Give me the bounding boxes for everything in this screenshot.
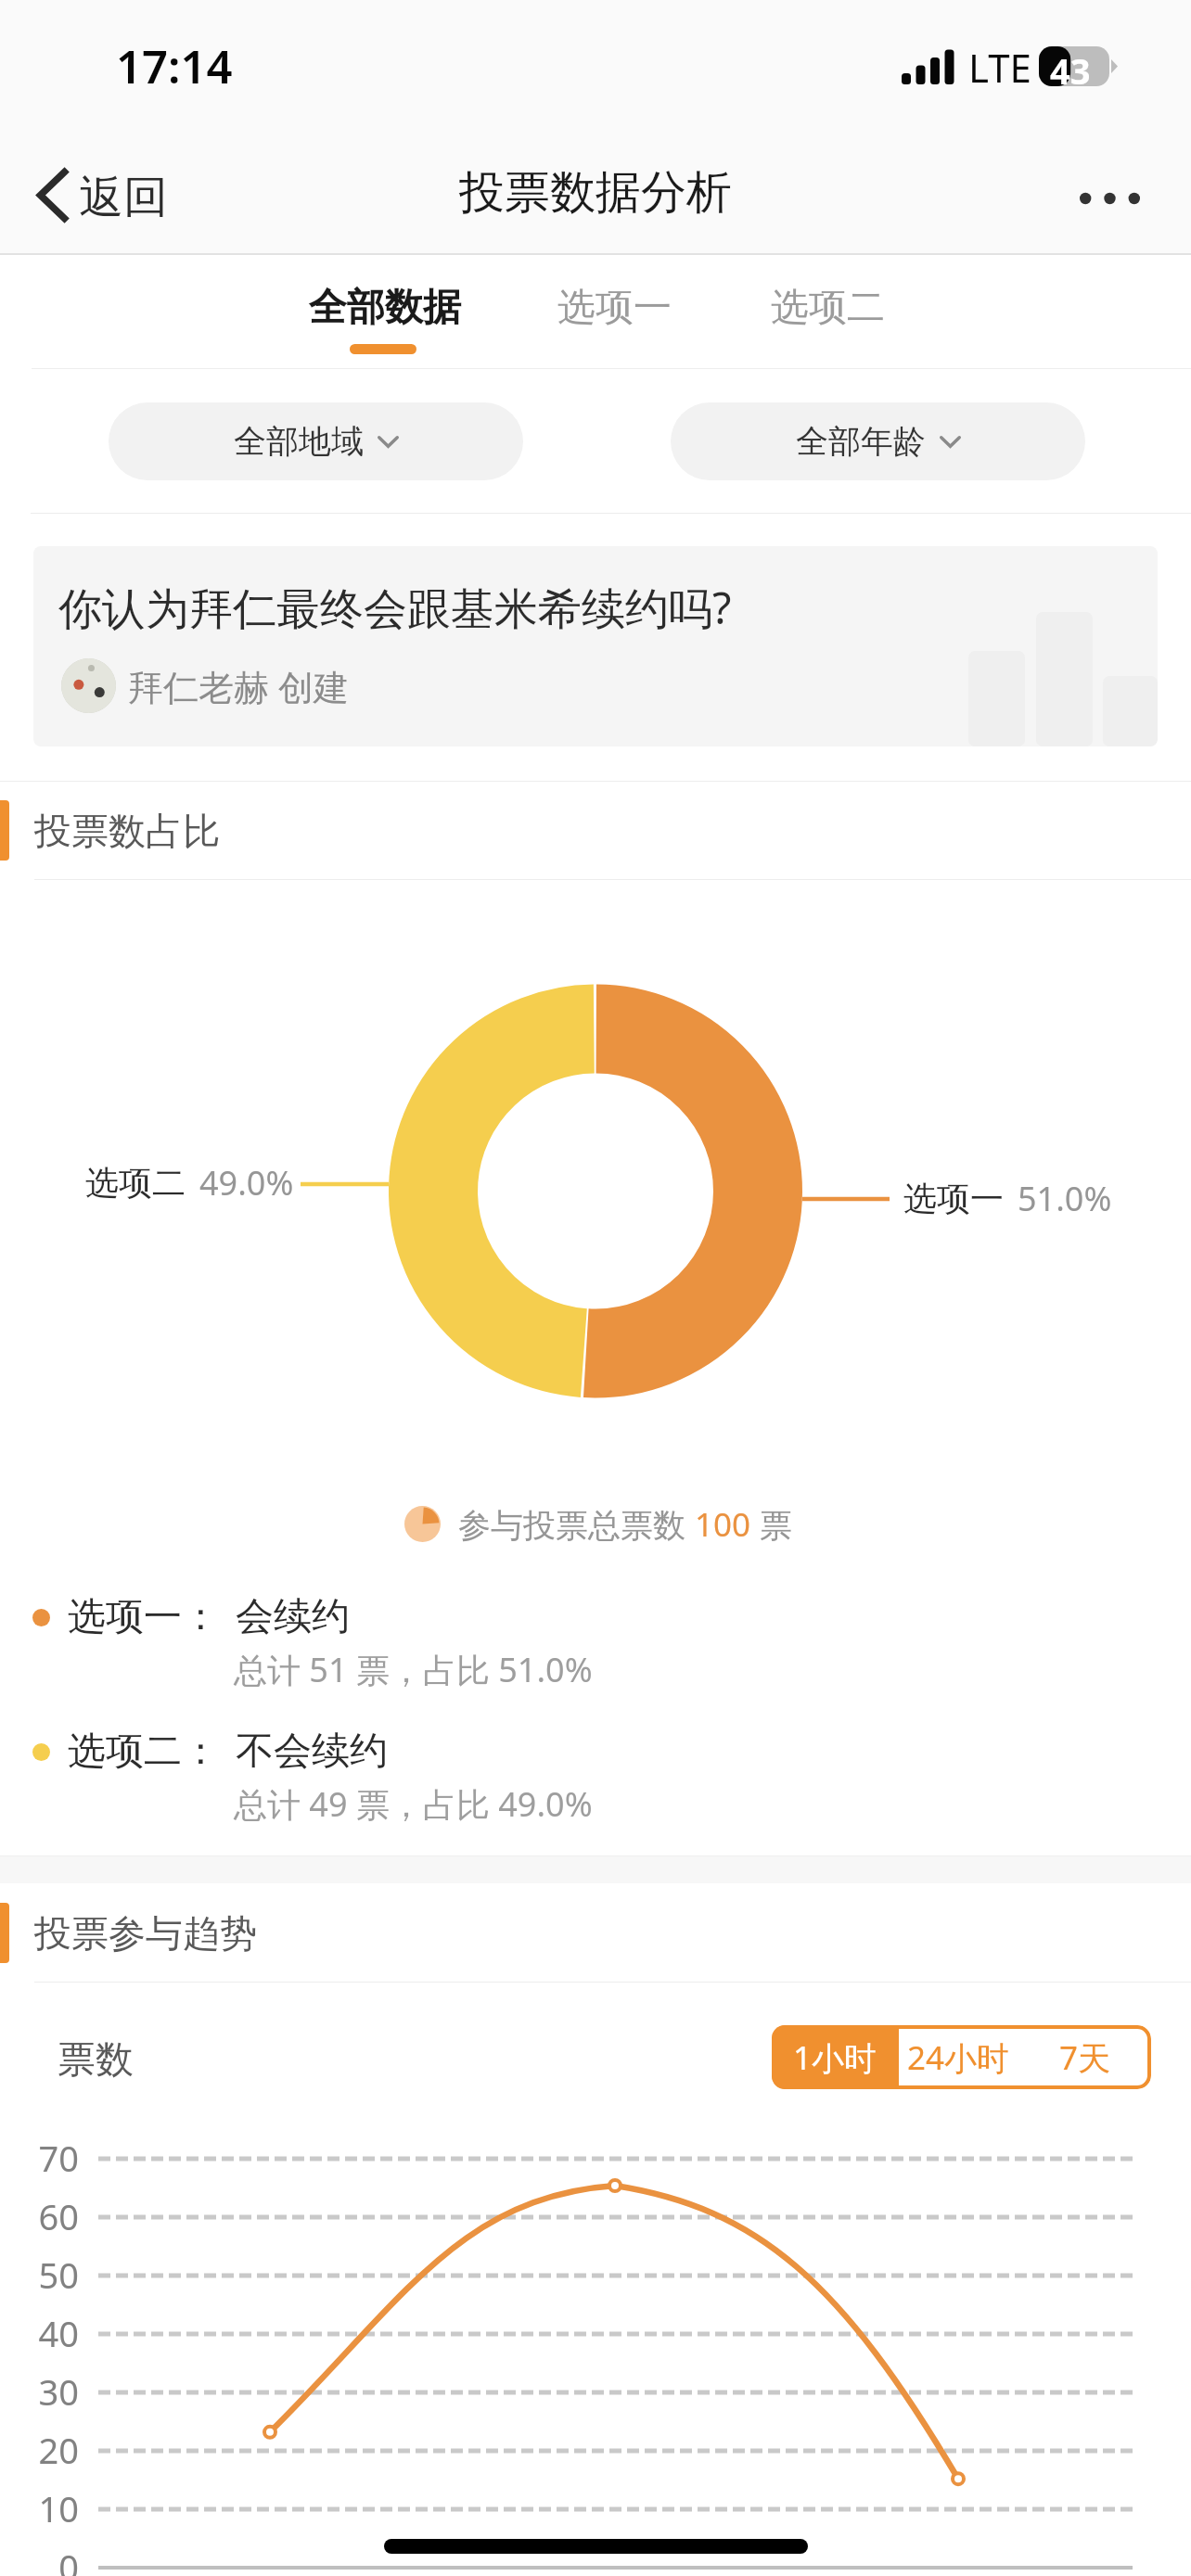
button[interactable]: 返回 xyxy=(0,155,190,240)
button[interactable]: 24小时 xyxy=(899,2025,1018,2089)
staticText: 选项一 xyxy=(557,284,672,332)
button[interactable]: 你认为拜仁最终会跟基米希续约吗? xyxy=(33,546,1158,746)
staticText: 10 xyxy=(0,2484,79,2532)
button[interactable]: 1小时 xyxy=(772,2025,899,2089)
staticText: 投票数占比 xyxy=(34,808,220,854)
staticText: 17:14 xyxy=(116,35,233,97)
staticText: 总计 51 票，占比 51.0% xyxy=(234,1647,593,1692)
staticText: 43 xyxy=(1050,46,1091,95)
staticText: 票 xyxy=(751,1502,793,1545)
staticText: 51.0% xyxy=(1018,1176,1112,1221)
staticText: 会续约 xyxy=(236,1593,350,1641)
staticText: 拜仁老赫 创建 xyxy=(128,662,349,710)
staticText: 1小时 xyxy=(793,2035,877,2080)
staticText: 你认为拜仁最终会跟基米希续约吗? xyxy=(58,578,732,637)
button[interactable]: 全部数据 xyxy=(290,268,480,370)
button[interactable]: 选项二： xyxy=(0,1728,1191,1827)
staticText: 选项二： xyxy=(68,1728,220,1776)
button[interactable]: 选项二 xyxy=(752,268,903,348)
staticText: 30 xyxy=(0,2367,79,2416)
staticText: 总计 49 票，占比 49.0% xyxy=(234,1781,593,1827)
staticText: 24小时 xyxy=(907,2035,1010,2080)
staticText: 不会续约 xyxy=(236,1728,388,1776)
staticText: 投票参与趋势 xyxy=(34,1910,257,1957)
staticText: 全部年龄 xyxy=(796,421,926,462)
staticText: 60 xyxy=(0,2192,79,2240)
button[interactable]: 7天 xyxy=(1018,2025,1151,2089)
staticText: 参与投票总票数 xyxy=(458,1502,695,1545)
staticText: 返回 xyxy=(79,170,168,225)
button[interactable]: 全部年龄 xyxy=(671,402,1085,480)
button[interactable]: 选项一 xyxy=(539,268,690,348)
staticText: 20 xyxy=(0,2426,79,2474)
staticText: 选项二 xyxy=(771,284,885,332)
staticText: 投票数据分析 xyxy=(459,164,732,222)
staticText: 7天 xyxy=(1059,2035,1111,2080)
staticText: 全部数据 xyxy=(309,284,461,332)
staticText: 选项一： xyxy=(68,1593,220,1641)
button[interactable]: 全部地域 xyxy=(109,402,523,480)
staticText: 49.0% xyxy=(199,1160,294,1205)
button[interactable]: 选项一： xyxy=(0,1593,1191,1692)
staticText: 100 xyxy=(695,1502,751,1545)
staticText: 0 xyxy=(0,2543,79,2576)
staticText: 全部地域 xyxy=(234,421,364,462)
staticText: 40 xyxy=(0,2309,79,2357)
staticText: 票数 xyxy=(58,2036,134,2085)
staticText: 选项一 xyxy=(903,1178,1004,1219)
staticText: 50 xyxy=(0,2251,79,2299)
staticText: 70 xyxy=(0,2134,79,2182)
button[interactable]: More options xyxy=(1043,168,1191,227)
staticText: 选项二 xyxy=(85,1162,186,1204)
staticText: LTE xyxy=(968,41,1031,94)
